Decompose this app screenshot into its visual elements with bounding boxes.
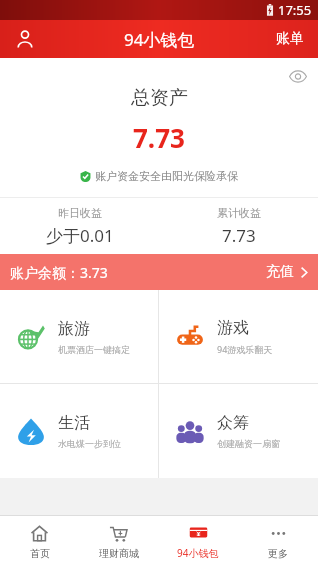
staticText: 生活 [58,413,90,433]
staticText: 旅游 [58,319,90,339]
button[interactable]: 理财商城 [79,516,158,566]
staticText: 少于0.01 [46,224,114,247]
staticText: 7.73 [133,120,185,155]
button[interactable]: 首页 [0,516,79,566]
staticText: 账户资金安全由阳光保险承保 [95,169,238,183]
staticText: 机票酒店一键搞定 [58,344,130,355]
button[interactable]: Profile [8,22,42,56]
staticText: 游戏 [217,318,249,338]
staticText: 昨日收益 [58,206,102,220]
staticText: 94游戏乐翻天 [217,343,273,355]
button[interactable]: 更多 [238,516,318,566]
staticText: 众筹 [217,413,249,433]
button[interactable]: 旅游 [0,290,158,383]
staticText: 首页 [30,547,50,560]
staticText: 累计收益 [217,206,261,220]
button[interactable]: 游戏 [159,290,318,383]
staticText: 创建融资一扇窗 [217,438,280,449]
staticText: 充值 [266,263,294,281]
staticText: 账户余额：3.73 [10,263,108,282]
button[interactable]: 账户余额：3.73 [0,254,318,290]
staticText: 理财商城 [99,547,139,560]
button[interactable]: 生活 [0,384,158,478]
staticText: 7.73 [222,224,256,247]
staticText: 总资产 [131,86,188,110]
button[interactable]: 94小钱包 [158,516,238,566]
staticText: 水电煤一步到位 [58,438,121,449]
button[interactable]: Toggle visibility [284,62,312,90]
staticText: 17:55 [278,1,312,19]
button[interactable]: 账单 [268,22,312,56]
button[interactable]: 众筹 [159,384,318,478]
staticText: 更多 [268,547,288,560]
staticText: 94小钱包 [177,546,219,560]
staticText: 94小钱包 [124,28,195,51]
staticText: 账单 [276,30,304,48]
